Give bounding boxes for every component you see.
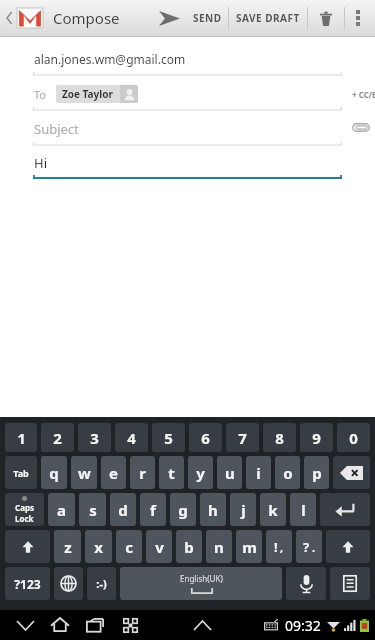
staticText: d <box>118 500 128 520</box>
button[interactable]: 8 <box>263 423 296 452</box>
button[interactable]: Shift <box>326 530 370 563</box>
staticText: o <box>283 463 293 483</box>
staticText: ?123 <box>14 576 41 592</box>
button[interactable]: j <box>230 493 256 526</box>
button[interactable]: h <box>200 493 226 526</box>
staticText: r <box>139 463 146 483</box>
button[interactable]: Backspace <box>333 456 370 489</box>
button[interactable]: 2 <box>41 423 74 452</box>
staticText: Zoe Taylor <box>62 87 113 101</box>
staticText: Lock <box>15 513 34 524</box>
staticText: SEND <box>193 11 222 25</box>
button[interactable]: Question mark and period <box>296 530 322 563</box>
button[interactable]: Send <box>151 0 187 36</box>
staticText: 6 <box>201 428 210 448</box>
staticText: h <box>208 500 218 520</box>
staticText: 7 <box>238 428 247 448</box>
staticText: Subject <box>34 120 79 138</box>
button[interactable]: q <box>41 456 67 489</box>
button[interactable]: alan.jones.wm@gmail.com <box>0 46 375 76</box>
button[interactable]: t <box>159 456 184 489</box>
button[interactable]: Hide keyboard <box>10 610 40 640</box>
button[interactable]: Discard <box>308 0 344 36</box>
staticText: Caps <box>15 502 34 513</box>
button[interactable]: SEND <box>187 0 228 36</box>
button[interactable]: Shift <box>5 530 50 563</box>
staticText: y <box>196 463 205 483</box>
staticText: w <box>78 463 91 483</box>
button[interactable]: 9 <box>300 423 333 452</box>
button[interactable]: Add Cc Bcc <box>352 84 375 104</box>
button[interactable]: Voice input <box>286 567 326 600</box>
button[interactable]: 6 <box>189 423 222 452</box>
button[interactable]: Expand <box>187 610 217 640</box>
button[interactable]: Attach file <box>352 118 374 136</box>
button[interactable]: n <box>206 530 232 563</box>
button[interactable]: p <box>304 456 329 489</box>
button[interactable]: Subject <box>0 116 375 146</box>
button[interactable]: 4 <box>115 423 148 452</box>
staticText: 8 <box>275 428 284 448</box>
staticText: 5 <box>164 428 173 448</box>
button[interactable]: Compose <box>3 0 123 36</box>
staticText: g <box>178 500 188 520</box>
staticText: n <box>214 537 224 557</box>
button[interactable]: g <box>170 493 196 526</box>
button[interactable]: 5 <box>152 423 185 452</box>
button[interactable]: i <box>246 456 271 489</box>
button[interactable]: Space <box>120 567 282 600</box>
button[interactable]: ?123 <box>5 567 50 600</box>
button[interactable]: s <box>79 493 106 526</box>
button[interactable]: Hi <box>0 151 375 179</box>
button[interactable]: Home <box>45 610 75 640</box>
button[interactable]: :-) <box>87 567 116 600</box>
staticText: Tab <box>13 467 29 479</box>
button[interactable]: k <box>260 493 286 526</box>
button[interactable]: 3 <box>78 423 111 452</box>
button[interactable]: Recent apps <box>80 610 110 640</box>
button[interactable]: Screenshot <box>115 610 145 640</box>
button[interactable]: o <box>275 456 300 489</box>
staticText: 1 <box>17 428 26 448</box>
button[interactable]: w <box>71 456 97 489</box>
button[interactable]: Exclamation mark and comma <box>266 530 292 563</box>
button[interactable]: c <box>116 530 142 563</box>
button[interactable]: m <box>236 530 262 563</box>
button[interactable]: d <box>110 493 136 526</box>
button[interactable]: b <box>176 530 202 563</box>
button[interactable]: Tab <box>5 456 37 489</box>
button[interactable]: l <box>290 493 316 526</box>
button[interactable]: z <box>54 530 81 563</box>
staticText: v <box>155 537 164 557</box>
button[interactable]: x <box>85 530 112 563</box>
button[interactable]: y <box>188 456 213 489</box>
staticText: 2 <box>53 428 62 448</box>
button[interactable]: 7 <box>226 423 259 452</box>
staticText: Hi <box>34 154 47 172</box>
button[interactable]: To <box>0 81 375 111</box>
button[interactable]: Enter <box>320 493 370 526</box>
staticText: 0 <box>349 428 358 448</box>
button[interactable]: f <box>140 493 166 526</box>
staticText: 4 <box>127 428 136 448</box>
button[interactable]: More options <box>345 0 371 36</box>
button[interactable]: e <box>101 456 126 489</box>
staticText: . <box>312 540 316 555</box>
button[interactable]: u <box>217 456 242 489</box>
button[interactable]: v <box>146 530 172 563</box>
button[interactable]: SAVE DRAFT <box>229 0 307 36</box>
button[interactable]: Change language <box>54 567 83 600</box>
staticText: 9 <box>312 428 321 448</box>
button[interactable]: 0 <box>337 423 370 452</box>
button[interactable]: a <box>48 493 75 526</box>
button[interactable]: Caps Lock <box>5 493 44 526</box>
staticText: c <box>125 537 133 557</box>
staticText: s <box>89 500 97 520</box>
staticText: j <box>241 500 246 520</box>
staticText: p <box>312 463 322 483</box>
button[interactable]: r <box>130 456 155 489</box>
button[interactable]: 1 <box>5 423 37 452</box>
staticText: f <box>150 500 156 520</box>
button[interactable]: Clipboard <box>330 567 370 600</box>
staticText: z <box>64 537 72 557</box>
